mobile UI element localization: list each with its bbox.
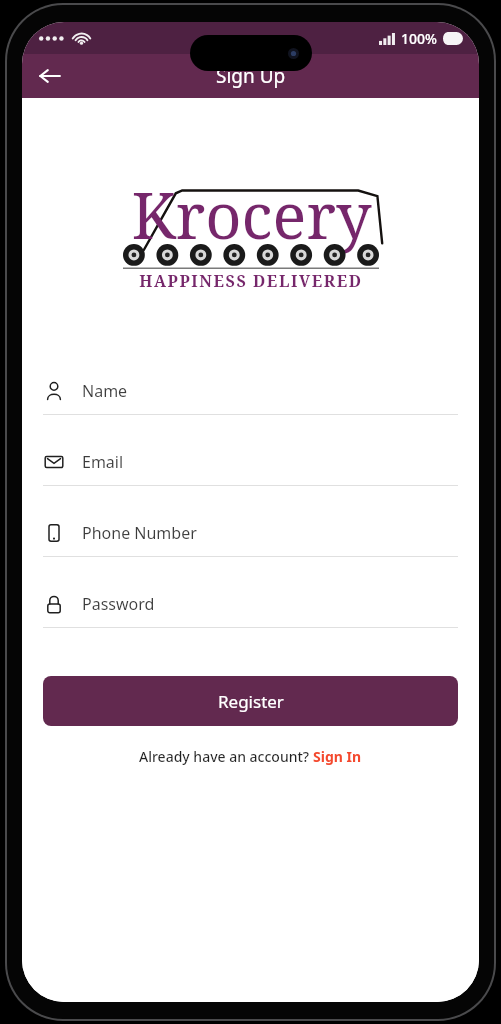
staticText: Name <box>82 380 128 402</box>
staticText: Already have an account? <box>139 747 313 766</box>
staticText: Password <box>82 593 155 615</box>
staticText: Sign In <box>313 747 362 766</box>
button[interactable]: Back <box>28 54 72 98</box>
button[interactable]: Phone Number <box>43 522 458 557</box>
button[interactable]: Password <box>43 593 458 628</box>
staticText: Krocery <box>131 172 372 258</box>
staticText: Register <box>218 690 284 713</box>
staticText: Email <box>82 451 124 473</box>
button[interactable]: Email <box>43 451 458 486</box>
staticText: 100% <box>401 29 437 48</box>
staticText: Phone Number <box>82 522 197 544</box>
button[interactable]: Name <box>43 380 458 415</box>
staticText: Sign Up <box>216 63 286 89</box>
staticText: HAPPINESS DELIVERED <box>139 270 363 292</box>
button[interactable]: Already have an account? <box>22 747 479 766</box>
button[interactable]: Register <box>43 676 458 726</box>
